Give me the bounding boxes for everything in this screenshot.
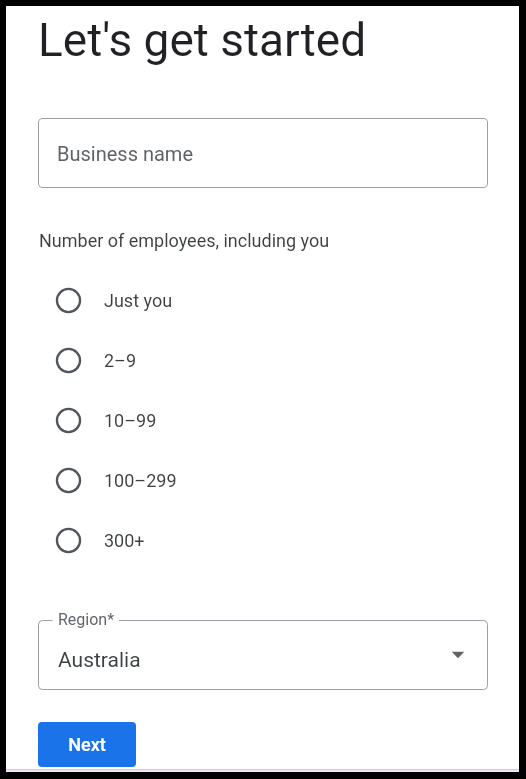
staticText: Australia xyxy=(58,648,141,673)
staticText: 100–299 xyxy=(104,470,177,491)
button[interactable]: Next xyxy=(38,722,136,767)
staticText: Next xyxy=(68,734,106,755)
staticText: Just you xyxy=(104,290,173,311)
button[interactable]: 100–299 xyxy=(54,456,374,505)
staticText: Business name xyxy=(57,142,193,165)
other: Open region list xyxy=(451,648,465,662)
button[interactable]: 300+ xyxy=(54,516,374,565)
staticText: Number of employees, including you xyxy=(39,230,330,251)
button[interactable]: 10–99 xyxy=(54,396,374,445)
button[interactable]: 2–9 xyxy=(54,336,374,385)
staticText: 2–9 xyxy=(104,350,137,371)
button[interactable]: Australia xyxy=(38,610,488,690)
staticText: Let's get started xyxy=(38,13,367,67)
staticText: 300+ xyxy=(104,530,145,551)
button[interactable]: Business name xyxy=(38,118,488,188)
staticText: Region* xyxy=(58,610,115,629)
button[interactable]: Just you xyxy=(54,276,374,325)
staticText: 10–99 xyxy=(104,410,157,431)
